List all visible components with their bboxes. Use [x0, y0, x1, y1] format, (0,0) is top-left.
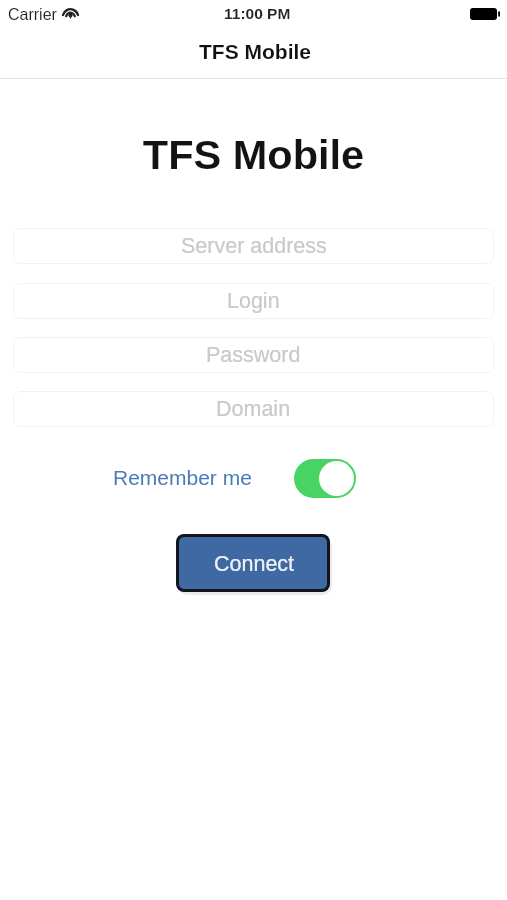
staticText: Login — [227, 289, 280, 313]
other: Battery full — [470, 8, 500, 20]
staticText: Domain — [216, 397, 291, 421]
button[interactable]: Login — [13, 283, 494, 319]
button[interactable]: Remember me toggle — [294, 459, 356, 498]
staticText: Remember me — [113, 466, 252, 489]
staticText: TFS Mobile — [199, 40, 311, 63]
staticText: Connect — [214, 552, 295, 576]
button[interactable]: Connect — [176, 534, 330, 592]
button[interactable]: Remember me — [113, 463, 255, 491]
staticText: 11:00 PM — [224, 5, 291, 22]
staticText: Server address — [181, 234, 327, 258]
staticText: Password — [206, 343, 301, 367]
button[interactable]: Password — [13, 337, 494, 373]
staticText: Carrier — [8, 6, 57, 24]
button[interactable]: Domain — [13, 391, 494, 427]
staticText: TFS Mobile — [0, 131, 507, 177]
other: Wi-Fi — [62, 5, 79, 19]
button[interactable]: Server address — [13, 228, 494, 264]
